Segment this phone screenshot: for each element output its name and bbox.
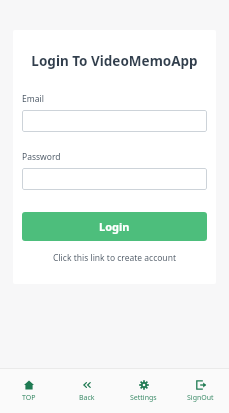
staticText: Email bbox=[22, 93, 44, 105]
button[interactable]: SignOut bbox=[172, 380, 229, 403]
button[interactable] bbox=[22, 110, 207, 132]
button[interactable]: TOP bbox=[0, 380, 58, 403]
button[interactable]: Back bbox=[58, 380, 115, 403]
button[interactable]: Login bbox=[22, 212, 207, 241]
staticText: Login bbox=[99, 219, 130, 234]
staticText: Click this link to create account bbox=[53, 252, 176, 264]
button[interactable]: Settings bbox=[115, 380, 172, 403]
staticText: Settings bbox=[130, 393, 157, 403]
staticText: TOP bbox=[22, 393, 36, 403]
staticText: Password bbox=[22, 151, 61, 163]
staticText: Login To VideoMemoApp bbox=[22, 52, 207, 70]
staticText: Back bbox=[79, 393, 95, 403]
button[interactable]: Click this link to create account bbox=[22, 252, 207, 264]
staticText: SignOut bbox=[187, 393, 214, 403]
button[interactable] bbox=[22, 168, 207, 190]
